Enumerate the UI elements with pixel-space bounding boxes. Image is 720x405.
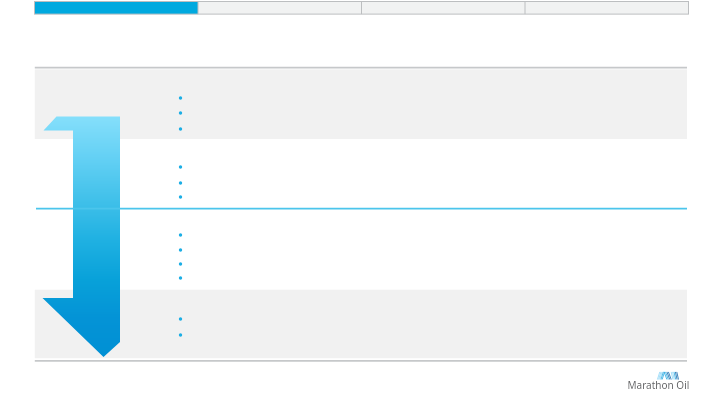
button[interactable]: Step 1 bbox=[35, 2, 199, 15]
button[interactable]: Row 1 bbox=[35, 68, 687, 139]
button[interactable]: Step 4 bbox=[527, 2, 689, 15]
button[interactable]: Row 3 bbox=[35, 208, 687, 290]
button[interactable]: Row 4 bbox=[35, 290, 687, 362]
button[interactable]: Step 3 bbox=[363, 2, 527, 15]
button[interactable]: Row 2 bbox=[35, 139, 687, 208]
button[interactable]: Marathon Oil bbox=[626, 370, 690, 392]
button[interactable]: Step 2 bbox=[199, 2, 363, 15]
